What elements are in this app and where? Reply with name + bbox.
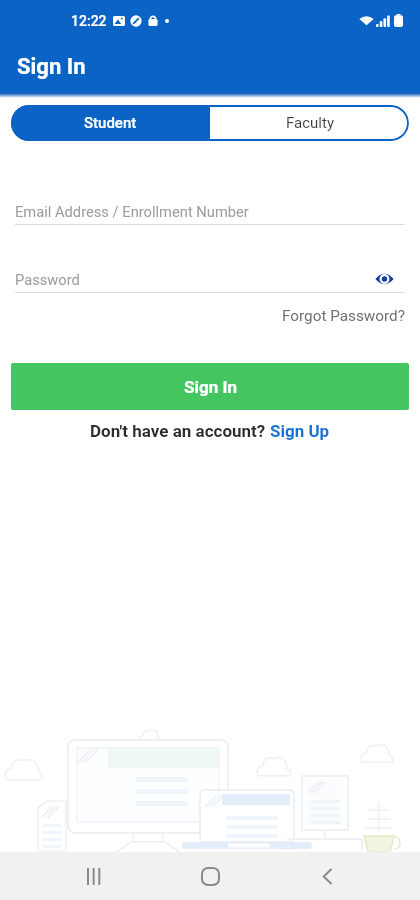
staticText: Sign In <box>184 377 237 397</box>
staticText: Student <box>84 114 137 132</box>
staticText: 12:22 <box>71 13 107 29</box>
staticText: Email Address / Enrollment Number <box>15 203 249 220</box>
staticText: Password <box>15 271 80 288</box>
staticText: Sign In <box>17 54 86 80</box>
button[interactable]: Show password <box>371 266 397 292</box>
button[interactable]: Sign Up <box>270 421 330 441</box>
button[interactable]: Sign In <box>11 363 409 410</box>
button[interactable]: Home <box>186 852 234 900</box>
button[interactable]: Back <box>303 852 351 900</box>
button[interactable]: Student <box>11 105 210 141</box>
button[interactable]: Forgot Password? <box>282 307 405 325</box>
staticText: Faculty <box>286 114 334 132</box>
button[interactable]: Recent apps <box>69 852 117 900</box>
staticText: Don't have an account? <box>90 421 270 441</box>
button[interactable]: Faculty <box>210 105 409 141</box>
